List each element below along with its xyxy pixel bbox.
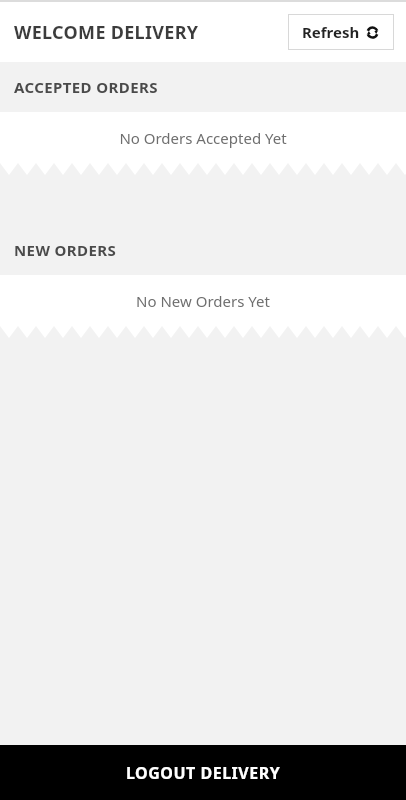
button[interactable]: Refresh: [288, 14, 394, 50]
button[interactable]: LOGOUT DELIVERY: [0, 745, 406, 800]
other: Refresh: [365, 25, 380, 40]
staticText: ACCEPTED ORDERS: [14, 77, 158, 97]
staticText: Refresh: [302, 22, 360, 42]
staticText: No New Orders Yet: [136, 291, 270, 311]
staticText: No Orders Accepted Yet: [119, 128, 287, 148]
staticText: NEW ORDERS: [14, 240, 117, 260]
staticText: WELCOME DELIVERY: [14, 20, 199, 45]
staticText: LOGOUT DELIVERY: [126, 762, 281, 784]
